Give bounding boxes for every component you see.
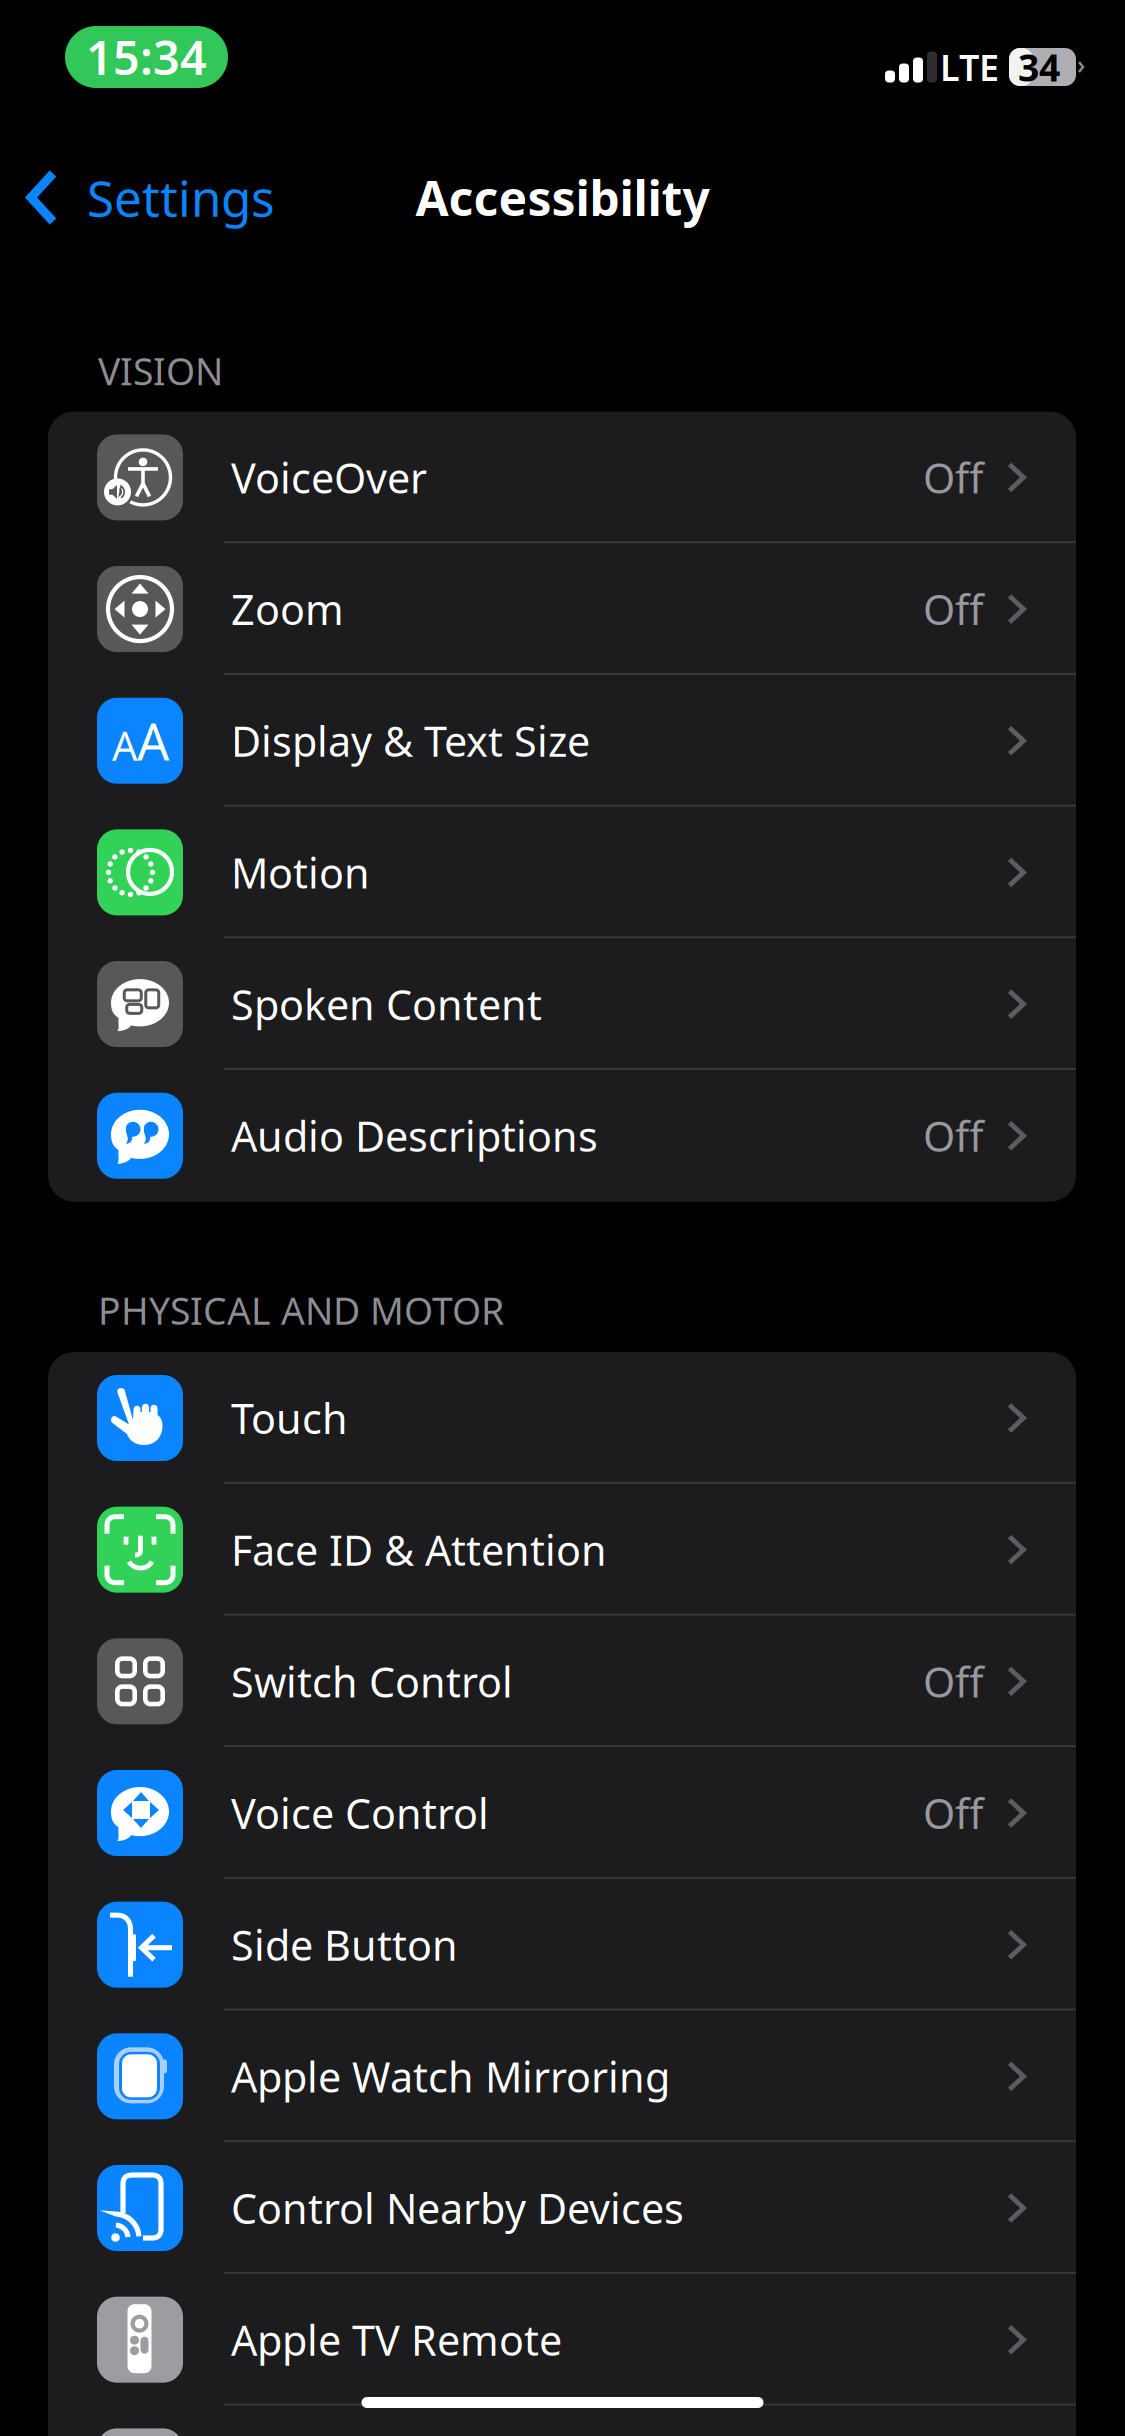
button[interactable]: Voice Control bbox=[48, 1747, 1076, 1879]
button[interactable]: Side Button bbox=[48, 1879, 1076, 2011]
button[interactable]: Switch Control bbox=[48, 1615, 1076, 1747]
staticText: Switch Control bbox=[231, 1654, 513, 1709]
button[interactable]: Apple Watch Mirroring bbox=[48, 2010, 1076, 2142]
staticText: Zoom bbox=[231, 582, 344, 636]
staticText: Off bbox=[923, 450, 983, 505]
button[interactable]: Touch bbox=[48, 1352, 1076, 1484]
staticText: VISION bbox=[98, 346, 223, 396]
staticText: A bbox=[137, 707, 169, 774]
button[interactable]: Control Nearby Devices bbox=[48, 2142, 1076, 2274]
button[interactable]: Apple TV Remote bbox=[48, 2274, 1076, 2406]
button[interactable]: Settings bbox=[0, 165, 275, 230]
staticText: Audio Descriptions bbox=[231, 1108, 598, 1163]
button[interactable]: A bbox=[48, 675, 1076, 807]
button[interactable]: Spoken Content bbox=[48, 938, 1076, 1070]
staticText: VoiceOver bbox=[231, 450, 427, 505]
staticText: Off bbox=[923, 1786, 983, 1840]
staticText: Motion bbox=[231, 845, 370, 900]
staticText: 15:34 bbox=[86, 26, 207, 88]
staticText: Off bbox=[923, 1654, 983, 1709]
staticText: Touch bbox=[231, 1391, 348, 1445]
button[interactable]: VoiceOver bbox=[48, 412, 1076, 543]
staticText: 34 bbox=[1018, 42, 1060, 92]
staticText: Apple Watch Mirroring bbox=[231, 2049, 670, 2104]
staticText: LTE bbox=[940, 43, 999, 91]
staticText: A bbox=[112, 719, 138, 772]
staticText: Control Nearby Devices bbox=[231, 2181, 684, 2235]
staticText: Off bbox=[923, 1108, 983, 1163]
staticText: Voice Control bbox=[231, 1786, 489, 1840]
staticText: Face ID & Attention bbox=[231, 1522, 607, 1577]
button[interactable]: Motion bbox=[48, 807, 1076, 938]
button[interactable]: Face ID & Attention bbox=[48, 1484, 1076, 1615]
staticText: Accessibility bbox=[415, 166, 709, 229]
button[interactable]: AirPods bbox=[48, 2405, 1076, 2436]
staticText: PHYSICAL AND MOTOR bbox=[98, 1286, 504, 1335]
staticText: Side Button bbox=[231, 1917, 458, 1972]
button[interactable]: Audio Descriptions bbox=[48, 1070, 1076, 1202]
staticText: Spoken Content bbox=[231, 977, 542, 1031]
staticText: Apple TV Remote bbox=[231, 2312, 562, 2367]
staticText: Settings bbox=[87, 165, 275, 230]
button[interactable]: Zoom bbox=[48, 543, 1076, 675]
staticText: Off bbox=[923, 582, 983, 636]
staticText: Display & Text Size bbox=[231, 713, 590, 768]
